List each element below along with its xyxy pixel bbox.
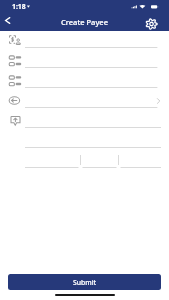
button[interactable]: Back — [1, 14, 14, 27]
button[interactable]: Field 2 — [0, 48, 169, 68]
button[interactable] — [80, 148, 118, 168]
button[interactable]: Field 3 — [0, 68, 169, 88]
button[interactable]: Submit — [8, 274, 161, 290]
staticText: Create Payee — [61, 17, 108, 27]
staticText: 1:18 — [12, 2, 26, 11]
button[interactable]: Settings — [144, 16, 159, 31]
button[interactable]: Field 4 — [0, 88, 169, 108]
button[interactable]: Field 1 — [0, 28, 169, 48]
button[interactable]: Field 5 — [0, 108, 169, 128]
staticText: Submit — [73, 278, 97, 287]
button[interactable] — [25, 148, 80, 168]
button[interactable] — [118, 148, 161, 168]
